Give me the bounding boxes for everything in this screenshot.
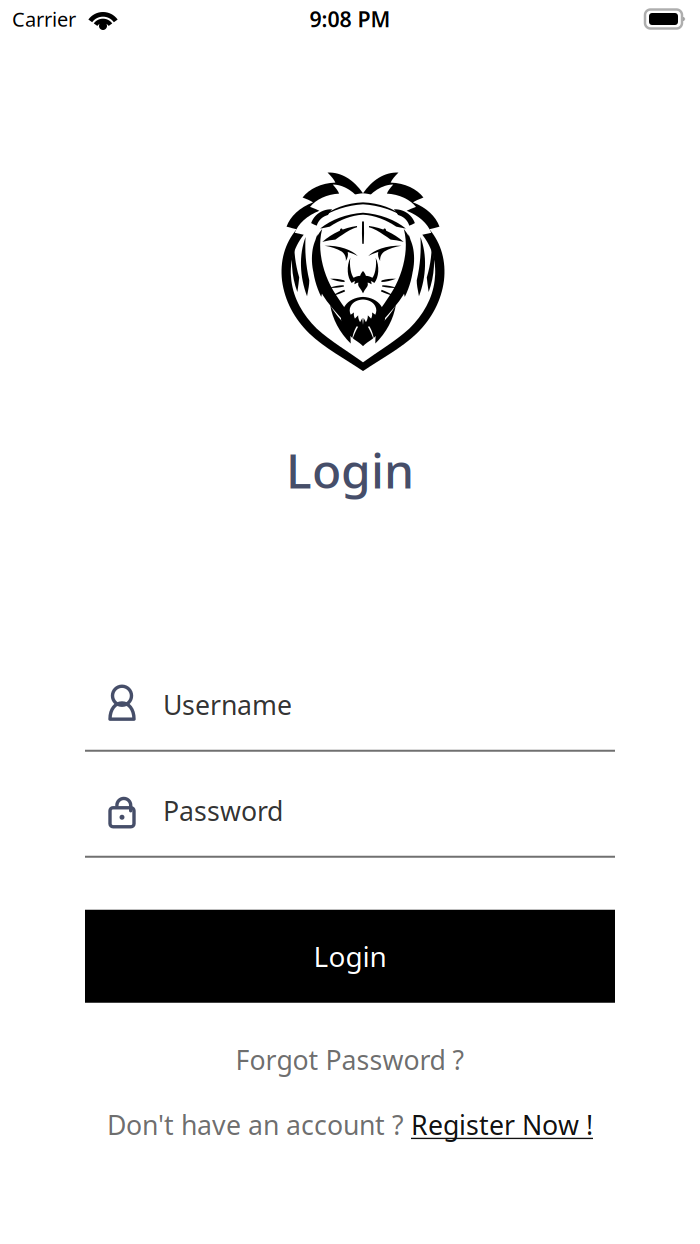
button[interactable]: Forgot Password ? <box>85 1037 615 1083</box>
staticText: Register Now ! <box>411 1107 593 1142</box>
button[interactable]: Register Now ! <box>411 1107 593 1142</box>
staticText: Forgot Password ? <box>235 1042 464 1077</box>
staticText: Login <box>313 938 386 975</box>
staticText: 9:08 PM <box>309 5 390 33</box>
staticText: Carrier <box>12 6 76 32</box>
staticText: Username <box>163 687 292 722</box>
staticText: Don't have an account ? <box>107 1107 411 1142</box>
button[interactable]: Login <box>85 910 615 1003</box>
staticText: Password <box>163 793 283 828</box>
staticText: Login <box>286 438 414 502</box>
